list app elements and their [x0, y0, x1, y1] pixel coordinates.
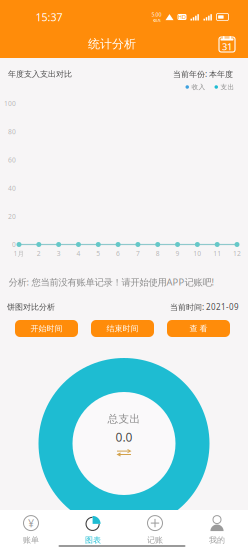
button[interactable]: 图表: [62, 510, 124, 550]
button[interactable]: 我的: [186, 510, 248, 550]
staticText: 饼图对比分析: [7, 302, 55, 312]
button[interactable]: ¥: [0, 510, 62, 550]
staticText: 1月: [13, 249, 24, 258]
staticText: 总支出: [107, 412, 140, 425]
staticText: 8: [156, 249, 160, 258]
staticText: 80: [8, 127, 16, 136]
staticText: 10: [193, 249, 201, 258]
staticText: 6: [116, 249, 120, 258]
staticText: 40: [8, 184, 16, 193]
staticText: ¥: [28, 516, 34, 530]
staticText: 开始时间: [30, 324, 62, 333]
button[interactable]: 开始时间: [15, 320, 78, 337]
staticText: 年度支入支出对比: [8, 69, 72, 79]
staticText: 图表: [85, 535, 101, 545]
staticText: 2: [37, 249, 41, 258]
staticText: KB/S: [152, 18, 160, 23]
staticText: 9: [175, 249, 179, 258]
staticText: 0: [12, 240, 16, 249]
staticText: 15:37: [35, 10, 62, 24]
staticText: 5.00: [151, 11, 161, 18]
staticText: 3: [57, 249, 61, 258]
staticText: 20: [8, 212, 16, 221]
staticText: HD: [178, 13, 186, 21]
staticText: 支出: [220, 83, 234, 91]
staticText: 7: [136, 249, 140, 258]
staticText: 5: [96, 249, 100, 258]
button[interactable]: 结束时间: [91, 320, 154, 337]
staticText: 统计分析: [88, 37, 136, 51]
staticText: 31: [222, 40, 232, 53]
staticText: 11: [213, 249, 221, 258]
staticText: 记账: [147, 535, 163, 545]
staticText: 12: [233, 249, 241, 258]
staticText: 分析: 您当前没有账单记录！请开始使用APP记账吧!: [8, 276, 214, 288]
staticText: 100: [4, 99, 16, 108]
staticText: 60: [8, 155, 16, 164]
button[interactable]: 查 看: [167, 320, 230, 337]
staticText: 账单: [23, 535, 39, 545]
staticText: 收入: [191, 83, 205, 91]
button[interactable]: 记账: [124, 510, 186, 550]
staticText: 当前时间: 2021-09: [170, 302, 239, 312]
staticText: 4: [76, 249, 80, 258]
staticText: 当前年份: 本年度: [173, 69, 233, 79]
staticText: 查 看: [189, 324, 207, 333]
button[interactable]: 日历: [215, 32, 239, 56]
staticText: 我的: [209, 535, 225, 545]
staticText: 结束时间: [106, 324, 138, 333]
staticText: 0.0: [115, 429, 132, 445]
